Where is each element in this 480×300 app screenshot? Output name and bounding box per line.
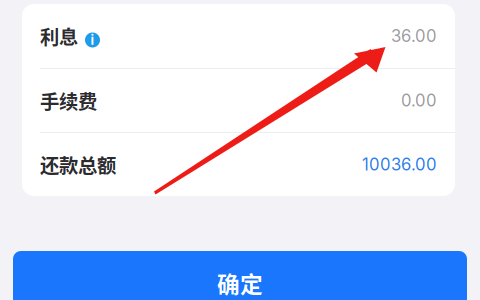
staticText: 还款总额 [40,150,116,178]
staticText: 10036.00 [362,154,437,175]
button[interactable]: About interest [85,32,100,47]
staticText: 利息 [40,22,78,50]
staticText: 确定 [217,267,263,299]
staticText: 0.00 [401,90,437,111]
staticText: i [90,32,94,48]
staticText: 手续费 [40,86,97,114]
button[interactable]: 确定 [13,251,467,300]
staticText: 36.00 [391,26,437,46]
